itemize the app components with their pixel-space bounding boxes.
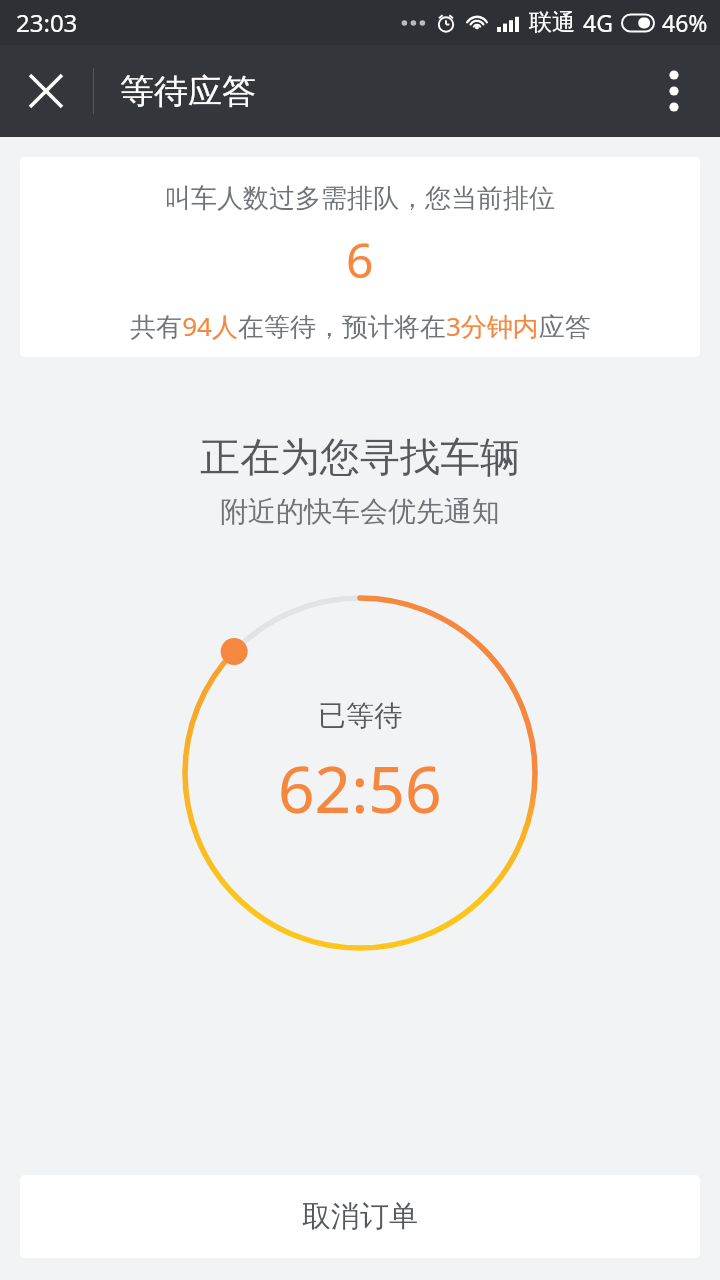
staticText: 叫车人数过多需排队，您当前排位 (165, 182, 555, 215)
button[interactable]: 叫车人数过多需排队，您当前排位 (20, 157, 700, 357)
staticText: 正在为您寻找车辆 (200, 432, 520, 482)
staticText: 共有94人在等待，预计将在3分钟内应答 (130, 308, 591, 344)
staticText: 已等待 (318, 698, 402, 733)
staticText: 62:56 (278, 745, 442, 832)
button[interactable]: More options (628, 45, 720, 137)
staticText: 46% (662, 7, 708, 38)
button[interactable]: 取消订单 (20, 1175, 700, 1258)
staticText: 4G (583, 7, 613, 38)
staticText: 等待应答 (120, 70, 256, 113)
staticText: 6 (346, 227, 374, 292)
staticText: 联通 (529, 8, 575, 37)
staticText: 取消订单 (302, 1198, 418, 1235)
staticText: 23:03 (16, 6, 78, 39)
staticText: 附近的快车会优先通知 (220, 494, 500, 529)
button[interactable]: Close (0, 45, 92, 137)
